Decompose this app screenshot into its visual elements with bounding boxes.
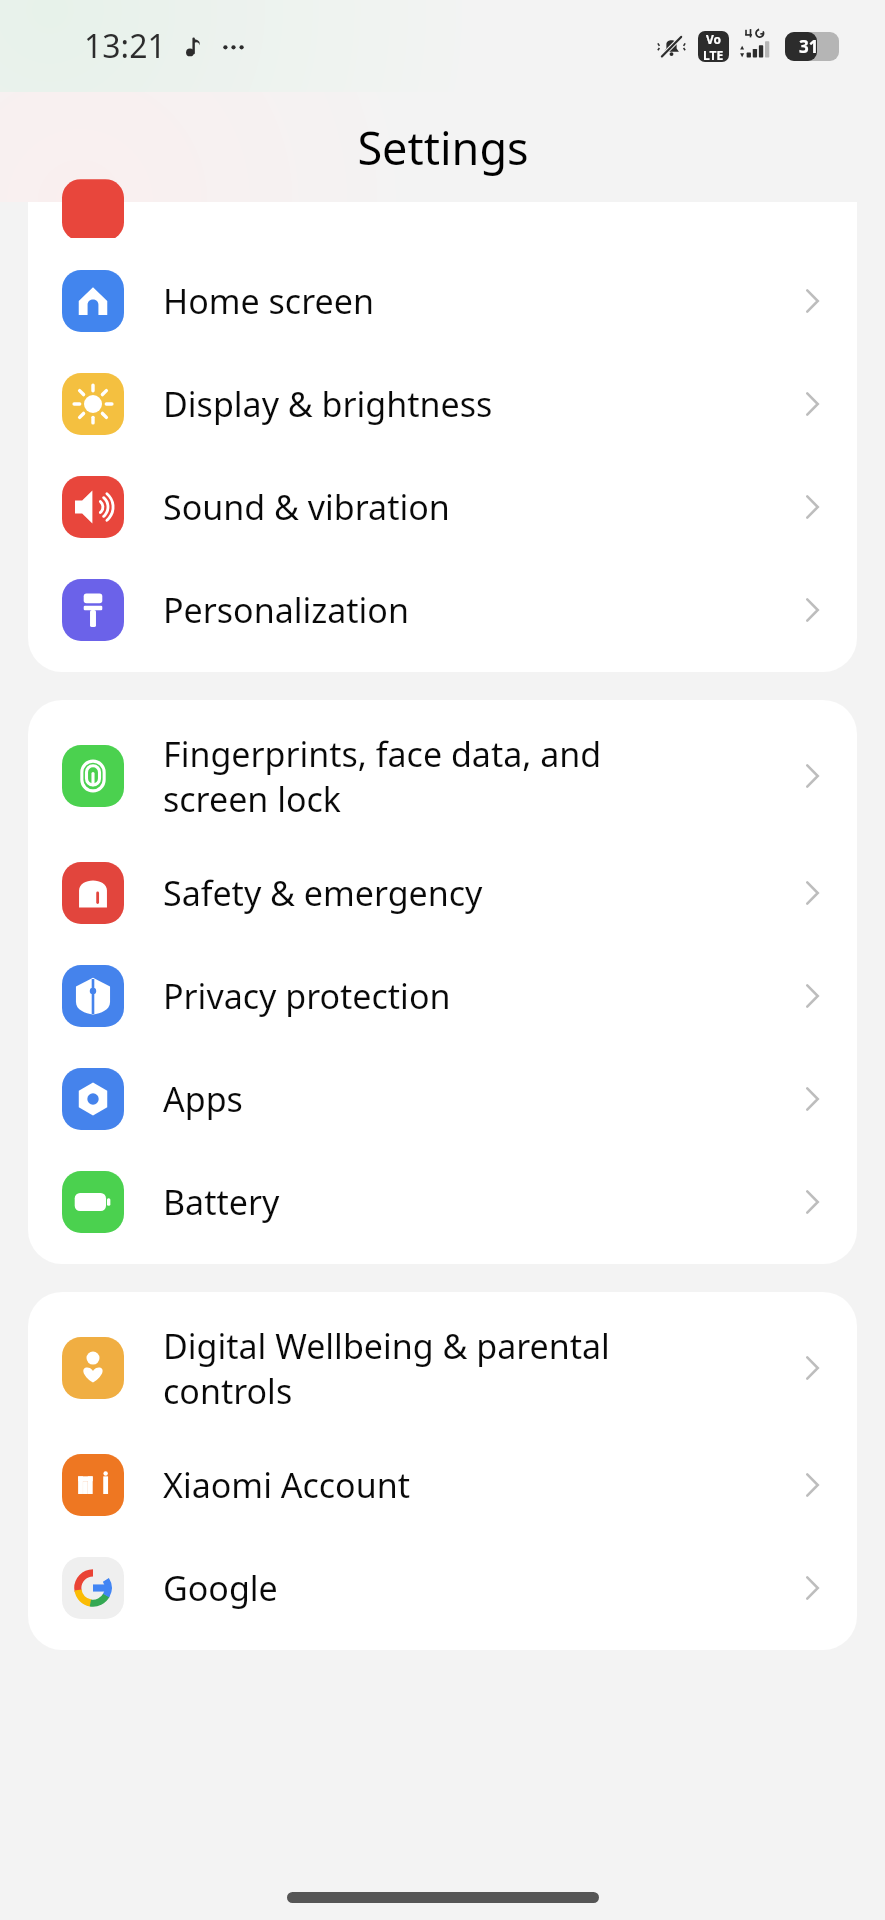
staticText: LTE	[703, 47, 724, 62]
button[interactable]: Personalization	[28, 558, 857, 661]
other: Open Display & brightness	[795, 387, 829, 421]
staticText: Google	[163, 1565, 785, 1611]
staticText: Settings	[357, 117, 529, 178]
other: Open Fingerprints, face data, and screen…	[795, 759, 829, 793]
staticText: Display & brightness	[163, 381, 785, 427]
staticText: Xiaomi Account	[163, 1462, 785, 1508]
other: Open Home screen	[795, 284, 829, 318]
button[interactable]: Google	[28, 1536, 857, 1639]
button[interactable]: Home screen	[28, 249, 857, 352]
other: Open Digital Wellbeing & parental contro…	[795, 1351, 829, 1385]
staticText: Privacy protection	[163, 973, 785, 1019]
staticText: 13:21	[84, 24, 166, 68]
other: Open Battery	[795, 1185, 829, 1219]
button[interactable]: Battery	[28, 1150, 857, 1253]
other: Open Google	[795, 1571, 829, 1605]
other: Open Apps	[795, 1082, 829, 1116]
button[interactable]: Fingerprints, face data, and screen lock	[28, 711, 857, 841]
button[interactable]: Xiaomi Account	[28, 1433, 857, 1536]
other: Open Sound & vibration	[795, 490, 829, 524]
staticText: Sound & vibration	[163, 484, 785, 530]
button[interactable]: Sound & vibration	[28, 455, 857, 558]
staticText: Digital Wellbeing & parental controls	[163, 1323, 785, 1414]
button[interactable]: Safety & emergency	[28, 841, 857, 944]
staticText: 31	[799, 35, 819, 58]
staticText: Fingerprints, face data, and screen lock	[163, 731, 785, 822]
other: Open Xiaomi Account	[795, 1468, 829, 1502]
other: Open Personalization	[795, 593, 829, 627]
button[interactable]: Display & brightness	[28, 352, 857, 455]
button[interactable]: Digital Wellbeing & parental controls	[28, 1303, 857, 1433]
button[interactable]: Privacy protection	[28, 944, 857, 1047]
staticText: Personalization	[163, 587, 785, 633]
staticText: Vo	[706, 31, 722, 47]
button[interactable]: Apps	[28, 1047, 857, 1150]
other: Open Privacy protection	[795, 979, 829, 1013]
other: Open Safety & emergency	[795, 876, 829, 910]
staticText: Apps	[163, 1076, 785, 1122]
staticText: Battery	[163, 1179, 785, 1225]
staticText: Home screen	[163, 278, 785, 324]
staticText: Safety & emergency	[163, 870, 785, 916]
